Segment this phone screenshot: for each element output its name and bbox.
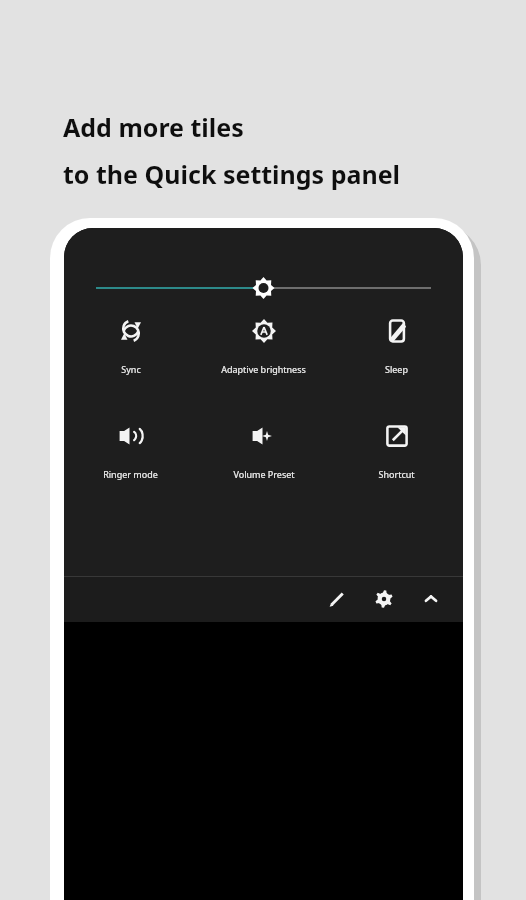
button[interactable]: Edit tiles [322, 584, 352, 614]
button[interactable]: Shortcut [330, 419, 463, 482]
staticText: Adaptive brightness [221, 363, 306, 375]
staticText: Sync [121, 363, 141, 375]
button[interactable]: Sync [64, 314, 197, 377]
staticText: Shortcut [378, 468, 415, 480]
staticText: Add more tiles [63, 110, 244, 144]
button[interactable]: Ringer mode [64, 419, 197, 482]
button[interactable]: Volume Preset [197, 419, 330, 482]
button[interactable]: Sleep [330, 314, 463, 377]
button[interactable]: Collapse [416, 584, 446, 614]
button[interactable]: Adaptive brightness [197, 314, 330, 377]
staticText: Volume Preset [233, 468, 295, 480]
button[interactable]: Settings [369, 584, 399, 614]
staticText: Sleep [385, 363, 408, 375]
staticText: to the Quick settings panel [63, 157, 401, 191]
staticText: Ringer mode [103, 468, 158, 480]
